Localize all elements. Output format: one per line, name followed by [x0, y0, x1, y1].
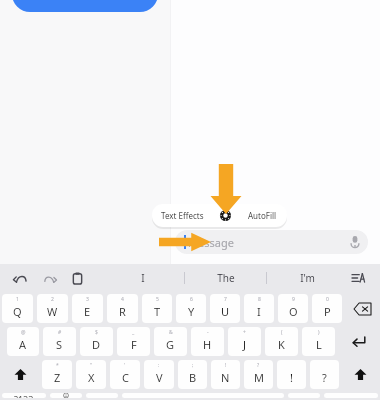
button[interactable]: !	[277, 360, 306, 389]
staticText: V	[156, 370, 163, 385]
button[interactable]: Text formatting	[348, 267, 370, 289]
staticText: U	[221, 304, 230, 319]
button[interactable]: *	[42, 360, 72, 389]
staticText: 9	[292, 296, 295, 303]
staticText: E	[84, 304, 91, 319]
button[interactable]: 2	[37, 294, 68, 323]
button[interactable]: Backspace	[346, 294, 378, 323]
button[interactable]: !	[211, 360, 240, 389]
button[interactable]: 4	[107, 294, 138, 323]
staticText: The	[217, 271, 235, 285]
staticText: !	[290, 370, 293, 385]
staticText: Message	[188, 235, 234, 250]
staticText: Text Effects	[161, 210, 204, 221]
button[interactable]: AutoFill	[238, 204, 287, 227]
staticText: A	[19, 337, 27, 352]
button[interactable]: 8	[244, 294, 274, 323]
button[interactable]: 9	[278, 294, 308, 323]
staticText: R	[119, 304, 126, 319]
button[interactable]: Emoji	[50, 393, 82, 398]
button[interactable]: 0	[312, 294, 342, 323]
button[interactable]: Enter	[339, 327, 378, 356]
button[interactable]: -	[191, 327, 224, 356]
staticText: !	[225, 362, 227, 369]
button[interactable]: :	[144, 360, 174, 389]
button[interactable]: Shift	[2, 360, 38, 389]
button[interactable]	[12, 0, 158, 12]
staticText: N	[221, 370, 230, 385]
staticText: $	[95, 329, 98, 336]
button[interactable]: Message	[175, 230, 368, 254]
button[interactable]: &	[154, 327, 187, 356]
staticText: "	[90, 362, 93, 369]
button[interactable]: Effects settings	[212, 204, 238, 227]
staticText: C	[122, 370, 129, 385]
button[interactable]: Redo	[38, 267, 60, 289]
staticText: 8	[258, 296, 261, 303]
button[interactable]: _	[117, 327, 150, 356]
staticText: Y	[188, 304, 195, 319]
button[interactable]: ?	[310, 360, 339, 389]
button[interactable]: ;	[178, 360, 207, 389]
staticText: B	[189, 370, 197, 385]
staticText: K	[278, 337, 285, 352]
button[interactable]: ?	[244, 360, 273, 389]
button[interactable]: "	[76, 360, 106, 389]
staticText: 1	[16, 296, 19, 303]
button[interactable]: Text Effects	[152, 204, 212, 227]
button[interactable]: 5	[142, 294, 172, 323]
button[interactable]: 6	[176, 294, 206, 323]
staticText: AutoFill	[248, 210, 277, 221]
staticText: -	[207, 329, 209, 336]
button[interactable]: I	[102, 264, 184, 292]
staticText: *	[56, 362, 59, 369]
staticText: Z	[54, 370, 61, 385]
button[interactable]: @	[7, 327, 39, 356]
button[interactable]: +	[228, 327, 261, 356]
staticText: I	[141, 271, 145, 285]
button[interactable]: 7	[210, 294, 240, 323]
staticText: ?123	[14, 393, 34, 398]
button[interactable]: Shift	[343, 360, 378, 389]
button[interactable]: I'm	[267, 264, 348, 292]
staticText: I	[257, 304, 261, 319]
button[interactable]: 3	[72, 294, 103, 323]
button[interactable]: '	[110, 360, 140, 389]
staticText: ?	[257, 362, 260, 369]
button[interactable]: )	[302, 327, 335, 356]
staticText: 2	[51, 296, 54, 303]
staticText: 4	[121, 296, 124, 303]
staticText: T	[154, 304, 161, 319]
staticText: (	[281, 329, 283, 336]
button[interactable]: $	[80, 327, 113, 356]
button[interactable]: ?123	[2, 393, 46, 398]
staticText: )	[318, 329, 320, 336]
button[interactable]: Clipboard	[66, 267, 88, 289]
staticText: ;	[192, 362, 194, 369]
staticText: 3	[86, 296, 89, 303]
staticText: &	[169, 329, 173, 336]
staticText: G	[166, 337, 175, 352]
staticText: S	[56, 337, 63, 352]
staticText: ?	[322, 370, 327, 385]
button[interactable]: #	[43, 327, 76, 356]
staticText: J	[243, 337, 247, 352]
button[interactable]: Voice input	[348, 235, 362, 249]
button[interactable]: The	[185, 264, 266, 292]
staticText: M	[254, 370, 264, 385]
staticText: L	[316, 337, 322, 352]
button[interactable]: Undo	[10, 267, 32, 289]
button[interactable]: (	[265, 327, 298, 356]
button[interactable]: 1	[2, 294, 33, 323]
staticText: W	[47, 304, 58, 319]
staticText: I'm	[300, 271, 315, 285]
staticText: #	[58, 329, 62, 336]
staticText: P	[324, 304, 331, 319]
staticText: 6	[190, 296, 193, 303]
staticText: F	[131, 337, 137, 352]
